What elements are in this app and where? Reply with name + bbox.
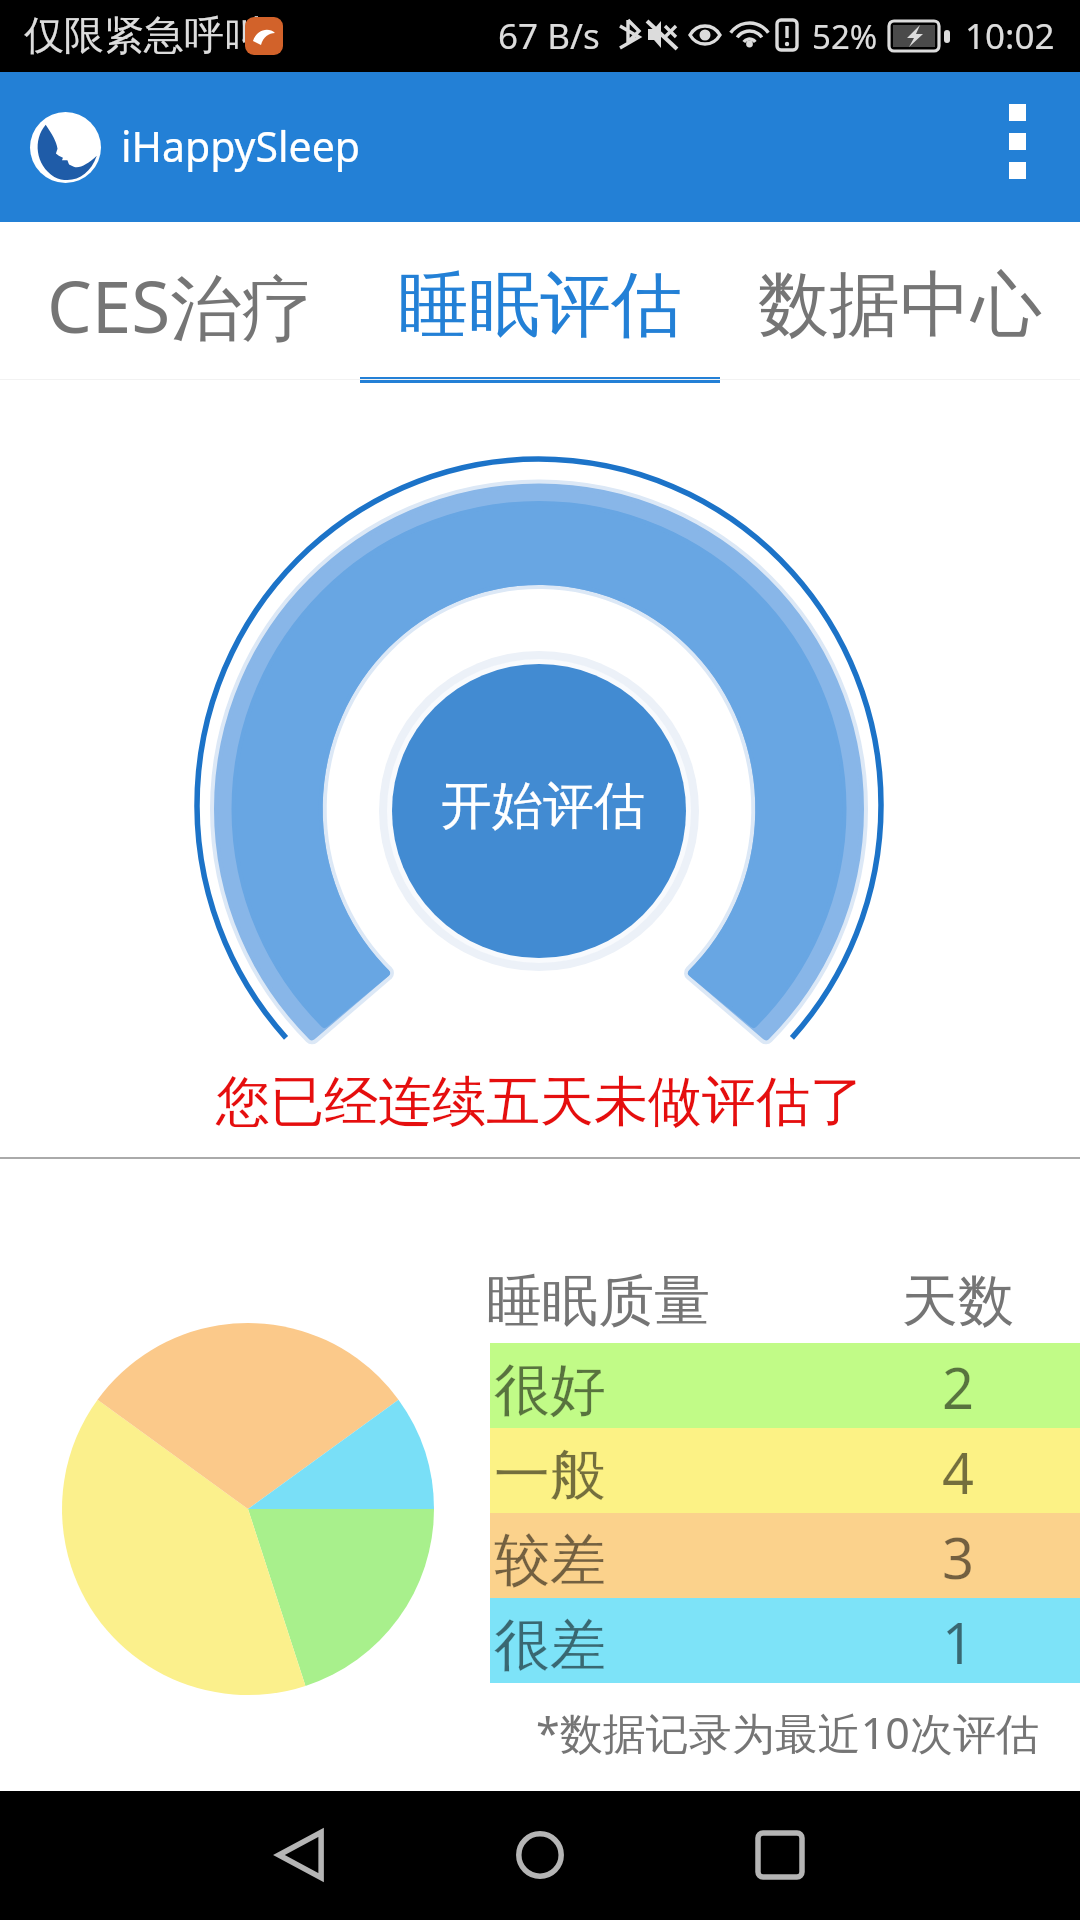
staticText: 很好 [494, 1355, 606, 1426]
staticText: 3 [942, 1519, 975, 1595]
staticText: 较差 [494, 1525, 606, 1596]
staticText: 数据中心 [758, 261, 1042, 350]
staticText: CES治疗 [47, 257, 313, 354]
staticText: 睡眠质量 [486, 1266, 710, 1337]
button[interactable]: 睡眠评估 [360, 222, 720, 380]
staticText: 很差 [494, 1610, 606, 1681]
staticText: 睡眠评估 [398, 261, 682, 350]
button[interactable]: 数据中心 [720, 222, 1080, 380]
button[interactable]: More options [980, 72, 1080, 222]
button[interactable]: 很好 [490, 1343, 1080, 1428]
staticText: 67 B/s [498, 12, 600, 60]
button[interactable]: Home [480, 1795, 600, 1915]
button[interactable]: 一般 [490, 1428, 1080, 1513]
staticText: 您已经连续五天未做评估了 [216, 1068, 864, 1136]
button[interactable]: 开始评估 [392, 664, 686, 958]
button[interactable]: Recents [720, 1795, 840, 1915]
button[interactable]: CES治疗 [0, 222, 360, 380]
staticText: 2 [942, 1349, 975, 1425]
staticText: 52% [812, 14, 878, 59]
staticText: 1 [942, 1604, 975, 1680]
staticText: 天数 [902, 1266, 1014, 1337]
staticText: 10:02 [965, 12, 1055, 60]
staticText: 仅限紧急呼叫 [24, 10, 264, 60]
staticText: 一般 [494, 1440, 606, 1511]
button[interactable]: 较差 [490, 1513, 1080, 1598]
button[interactable]: Back [240, 1795, 360, 1915]
button[interactable]: 很差 [490, 1598, 1080, 1683]
staticText: 4 [942, 1434, 975, 1510]
staticText: iHappySleep [121, 118, 361, 174]
staticText: 开始评估 [441, 774, 645, 838]
staticText: *数据记录为最近10次评估 [536, 1703, 1039, 1762]
